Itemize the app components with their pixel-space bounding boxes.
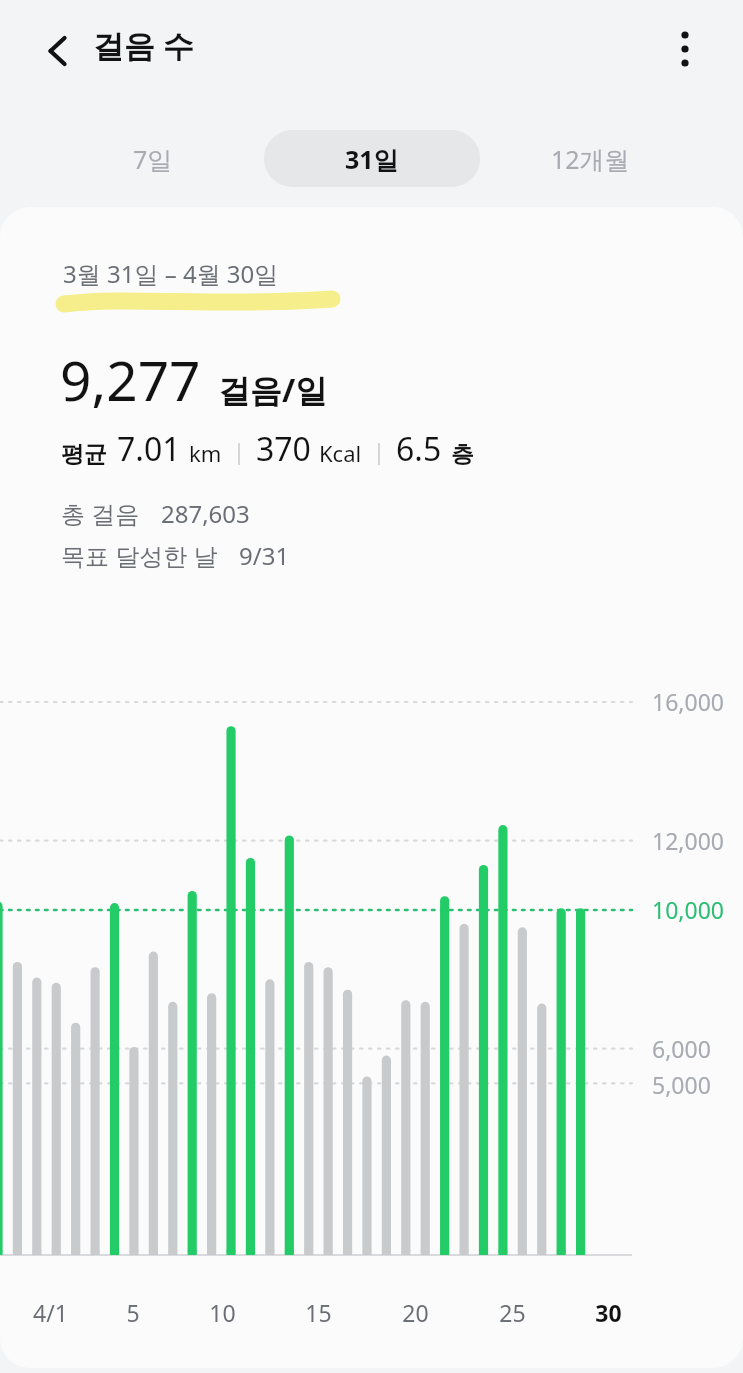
staticText: 층 xyxy=(451,440,474,469)
staticText: 30 xyxy=(595,1297,622,1328)
staticText: 6.5 xyxy=(396,427,442,471)
staticText: 9,277 xyxy=(60,342,201,417)
staticText: 370 xyxy=(256,427,311,471)
staticText: 4/1 xyxy=(33,1297,68,1328)
staticText: 걸음/일 xyxy=(218,368,328,412)
staticText: 31일 xyxy=(345,142,399,176)
staticText: Kcal xyxy=(319,438,362,468)
staticText: 평균 xyxy=(61,440,107,469)
staticText: 5,000 xyxy=(652,1069,711,1100)
staticText: 25 xyxy=(499,1297,526,1328)
staticText: 7.01 xyxy=(117,427,181,471)
staticText: 9/31 xyxy=(239,539,290,572)
staticText: 3월 31일 – 4월 30일 xyxy=(63,257,279,290)
button[interactable]: 7일 xyxy=(78,130,228,187)
staticText: 10,000 xyxy=(652,894,724,925)
staticText: 총 걸음 xyxy=(61,497,140,530)
staticText: 20 xyxy=(402,1297,429,1328)
button[interactable]: 31일 xyxy=(264,130,480,187)
staticText: 12개월 xyxy=(551,142,630,176)
staticText: km xyxy=(189,438,222,468)
staticText: 6,000 xyxy=(652,1033,711,1064)
staticText: 12,000 xyxy=(652,825,724,856)
staticText: 목표 달성한 날 xyxy=(61,539,218,572)
staticText: 287,603 xyxy=(161,497,250,530)
staticText: 15 xyxy=(305,1297,332,1328)
button[interactable]: Back xyxy=(28,22,86,80)
button[interactable]: More options xyxy=(656,20,714,78)
staticText: 16,000 xyxy=(652,686,724,717)
staticText: 10 xyxy=(209,1297,236,1328)
button[interactable]: 12개월 xyxy=(514,130,666,187)
staticText: 5 xyxy=(126,1297,140,1328)
staticText: 7일 xyxy=(133,142,173,176)
staticText: 걸음 수 xyxy=(93,24,195,66)
